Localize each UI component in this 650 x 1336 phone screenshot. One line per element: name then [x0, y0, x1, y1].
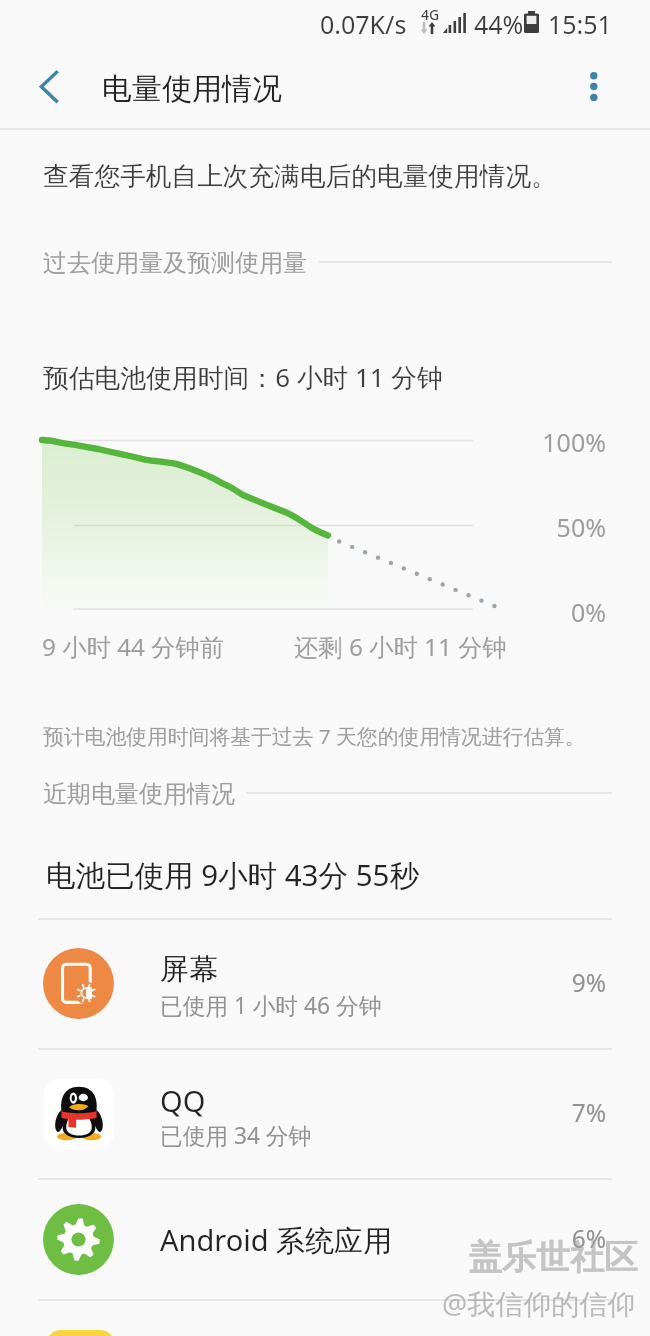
staticText: @我信仰的信仰	[442, 1284, 636, 1322]
button[interactable]: Back	[20, 62, 70, 112]
staticText: QQ	[160, 1081, 206, 1120]
staticText: 50%	[470, 510, 606, 544]
staticText: 还剩 6 小时 11 分钟	[294, 630, 507, 663]
staticText: 预估电池使用时间：6 小时 11 分钟	[43, 359, 443, 394]
staticText: 4G	[421, 5, 440, 24]
staticText: 电量使用情况	[102, 70, 282, 108]
staticText: 44%	[474, 7, 524, 41]
staticText: 预计电池使用时间将基于过去 7 天您的使用情况进行估算。	[43, 722, 586, 750]
staticText: 电池已使用 9小时 43分 55秒	[46, 854, 419, 894]
staticText: 已使用 34 分钟	[160, 1120, 312, 1151]
button[interactable]: More options	[572, 63, 616, 107]
staticText: 6%	[480, 1222, 606, 1255]
button[interactable]: 屏幕	[0, 918, 650, 1048]
button[interactable]: QQ	[0, 1048, 650, 1178]
staticText: 7%	[480, 1096, 606, 1129]
staticText: 屏幕	[160, 951, 218, 988]
staticText: 9 小时 44 分钟前	[42, 630, 225, 663]
staticText: 0%	[470, 595, 606, 629]
staticText: 已使用 1 小时 46 分钟	[160, 990, 382, 1021]
staticText: 15:51	[548, 7, 612, 41]
staticText: 100%	[470, 425, 606, 459]
staticText: 盖乐世社区	[468, 1236, 638, 1279]
staticText: 9%	[480, 966, 606, 999]
staticText: 查看您手机自上次充满电后的电量使用情况。	[43, 160, 557, 192]
staticText: 0.07K/s	[320, 7, 407, 41]
staticText: 近期电量使用情况	[43, 779, 235, 809]
staticText: 过去使用量及预测使用量	[43, 248, 307, 278]
button[interactable]: Android 系统应用	[0, 1179, 650, 1300]
staticText: Android 系统应用	[160, 1220, 393, 1260]
